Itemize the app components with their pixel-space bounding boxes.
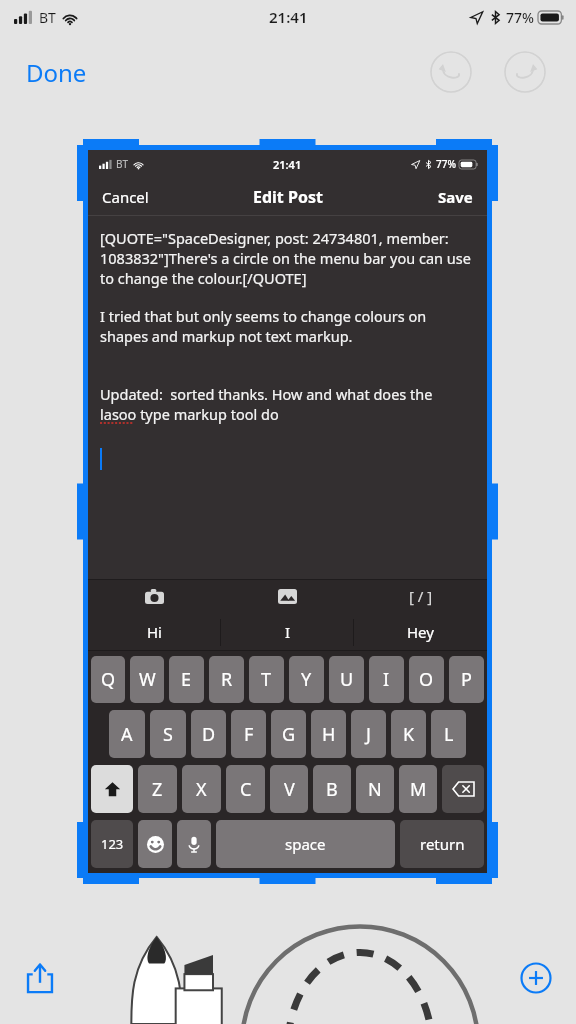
staticText: Y: [301, 667, 312, 692]
staticText: T: [261, 667, 272, 692]
button[interactable]: G: [271, 710, 306, 758]
staticText: 21:41: [269, 7, 308, 27]
button[interactable]: X: [182, 765, 221, 813]
button[interactable]: Cancel: [94, 183, 157, 211]
button[interactable]: Hi: [88, 613, 221, 651]
button[interactable]: Dictation: [177, 820, 211, 868]
button[interactable]: space: [216, 820, 395, 868]
button[interactable]: S: [150, 710, 186, 758]
staticText: Hi: [147, 622, 162, 642]
button[interactable]: T: [249, 656, 284, 703]
button[interactable]: W: [130, 656, 164, 703]
button[interactable]: H: [311, 710, 346, 758]
staticText: 77%: [506, 8, 534, 27]
button[interactable]: Y: [289, 656, 324, 703]
staticText: space: [285, 834, 326, 854]
button[interactable]: Z: [138, 765, 177, 813]
button[interactable]: Camera: [88, 579, 221, 613]
button[interactable]: Photo: [221, 579, 354, 613]
staticText: G: [282, 722, 296, 747]
staticText: Q: [101, 667, 116, 692]
button[interactable]: A: [109, 710, 145, 758]
button[interactable]: U: [329, 656, 364, 703]
staticText: [QUOTE="SpaceDesigner, post: 24734801, m…: [100, 228, 477, 288]
button[interactable]: Save: [430, 183, 481, 211]
staticText: Hey: [407, 622, 434, 642]
staticText: D: [202, 722, 216, 747]
button[interactable]: I: [369, 656, 404, 703]
staticText: B: [326, 777, 338, 802]
staticText: A: [121, 722, 133, 747]
staticText: [ / ]: [409, 586, 433, 606]
button[interactable]: K: [391, 710, 426, 758]
button[interactable]: Q: [91, 656, 125, 703]
staticText: Done: [26, 56, 87, 89]
staticText: W: [139, 667, 156, 692]
staticText: BT: [39, 8, 56, 27]
button[interactable]: Emoji: [138, 820, 172, 868]
button[interactable]: Redo: [502, 49, 548, 95]
button[interactable]: Done: [16, 50, 97, 95]
staticText: Cancel: [102, 187, 149, 207]
staticText: J: [366, 722, 371, 747]
staticText: S: [163, 722, 173, 747]
button[interactable]: return: [400, 820, 484, 868]
staticText: M: [410, 777, 427, 802]
staticText: BT: [116, 157, 129, 171]
button[interactable]: 123: [91, 820, 133, 868]
staticText: return: [420, 834, 465, 854]
button[interactable]: Shift: [91, 765, 133, 813]
button[interactable]: P: [449, 656, 484, 703]
button[interactable]: [ / ]: [354, 579, 487, 613]
staticText: O: [419, 667, 434, 692]
button[interactable]: Share: [18, 956, 62, 1000]
staticText: L: [444, 722, 454, 747]
button[interactable]: C: [226, 765, 265, 813]
button[interactable]: N: [356, 765, 394, 813]
staticText: Save: [438, 187, 473, 207]
staticText: I: [383, 667, 390, 692]
staticText: P: [461, 667, 472, 692]
button[interactable]: Delete: [442, 765, 484, 813]
button[interactable]: M: [399, 765, 437, 813]
button[interactable]: O: [409, 656, 444, 703]
staticText: Updated: sorted thanks. How and what doe…: [100, 384, 433, 404]
staticText: U: [340, 667, 354, 692]
staticText: E: [181, 667, 192, 692]
button[interactable]: J: [351, 710, 386, 758]
button[interactable]: R: [209, 656, 244, 703]
button[interactable]: V: [270, 765, 308, 813]
button[interactable]: Undo: [428, 49, 474, 95]
staticText: N: [368, 777, 382, 802]
staticText: K: [403, 722, 415, 747]
staticText: lasoo type markup tool do: [100, 404, 279, 424]
button[interactable]: Hey: [354, 613, 487, 651]
staticText: C: [240, 777, 252, 802]
staticText: F: [244, 722, 254, 747]
button[interactable]: D: [191, 710, 226, 758]
staticText: Edit Post: [253, 186, 323, 208]
staticText: R: [221, 667, 233, 692]
button[interactable]: L: [431, 710, 466, 758]
button[interactable]: B: [313, 765, 351, 813]
button[interactable]: I: [221, 613, 354, 651]
staticText: X: [196, 777, 207, 802]
staticText: 77%: [436, 157, 456, 171]
staticText: 21:41: [273, 157, 302, 172]
staticText: V: [284, 777, 295, 802]
staticText: I tried that but only seems to change co…: [100, 306, 477, 346]
button[interactable]: F: [231, 710, 266, 758]
staticText: 123: [101, 835, 124, 853]
button[interactable]: E: [169, 656, 204, 703]
staticText: I: [285, 622, 291, 642]
button[interactable]: Add: [514, 956, 558, 1000]
staticText: H: [322, 722, 336, 747]
staticText: Z: [152, 777, 163, 802]
